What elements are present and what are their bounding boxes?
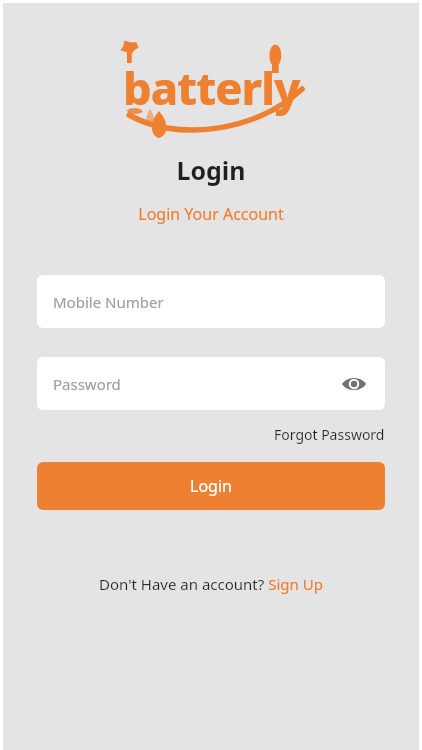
staticText: Login Your Account [138,203,284,225]
button[interactable]: Password [37,357,385,410]
staticText: Forgot Password [274,425,385,444]
staticText: Login [176,153,246,187]
button[interactable]: Login [37,462,385,510]
button[interactable]: Forgot Password [274,425,385,444]
staticText: batterly [123,57,300,118]
staticText: Password [53,374,121,394]
staticText: Mobile Number [53,292,164,312]
staticText: Don't Have an account? Sign Up [99,574,323,594]
button[interactable]: Don't Have an account? Sign Up [99,574,323,594]
staticText: Login [190,475,232,497]
button[interactable]: Mobile Number [37,275,385,328]
button[interactable]: Show password [339,369,369,399]
